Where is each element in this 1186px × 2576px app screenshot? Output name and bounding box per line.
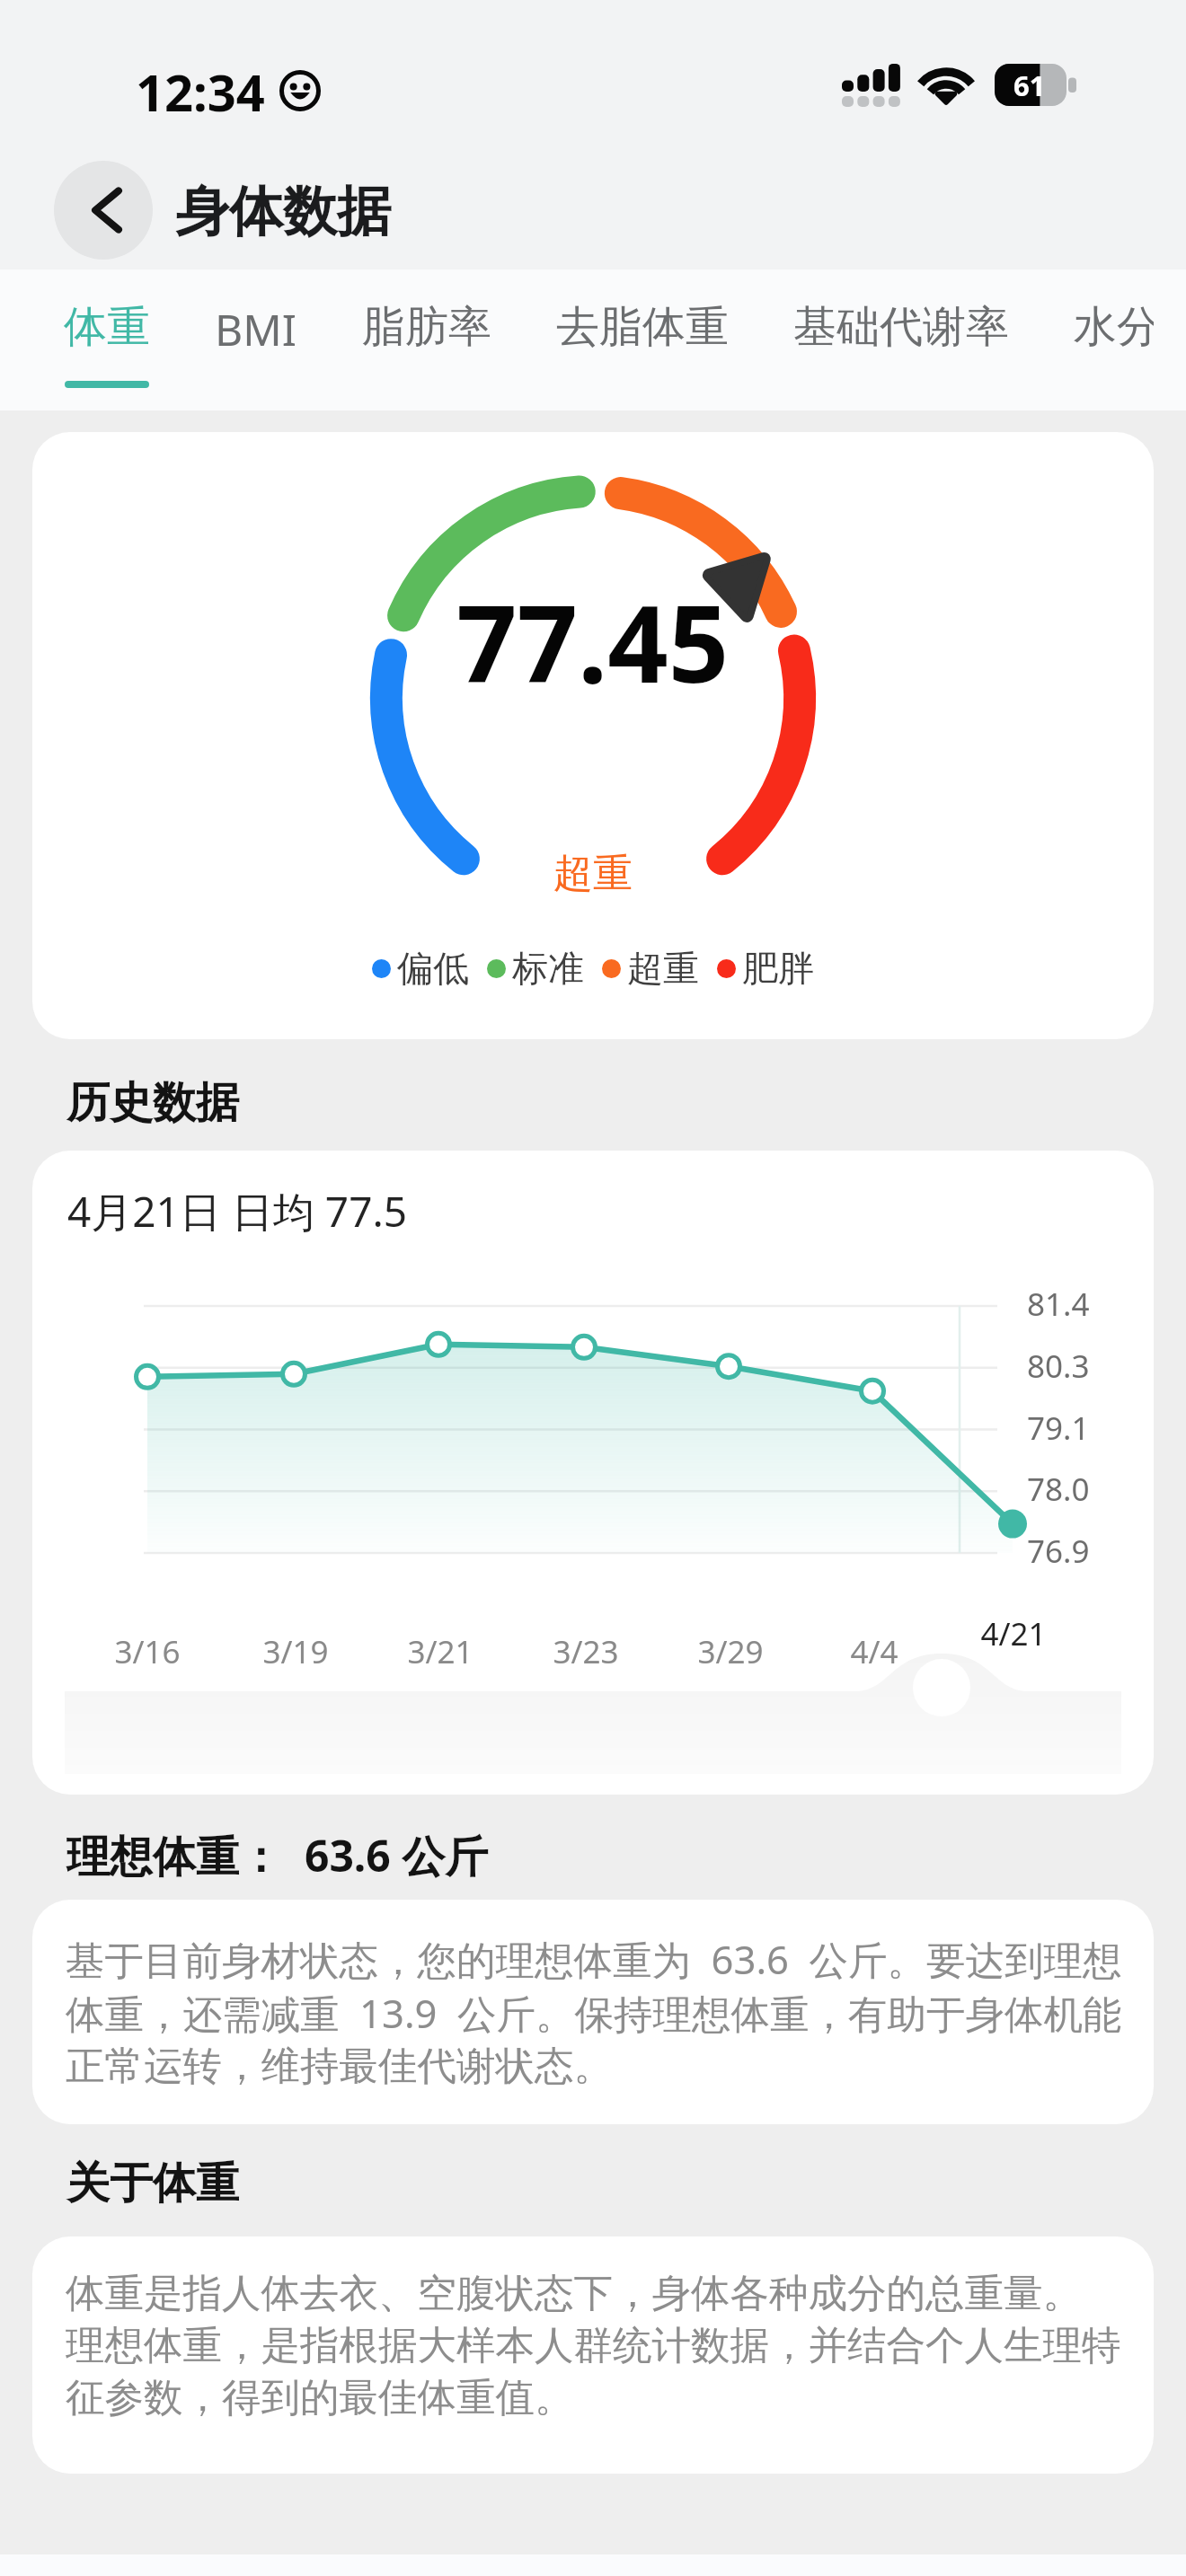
staticText: 80.3	[1027, 1345, 1090, 1388]
staticText: 3/21	[407, 1630, 474, 1673]
staticText: 77.45	[456, 569, 730, 714]
staticText: 去脂体重	[556, 300, 729, 354]
staticText: 水分率	[1074, 300, 1154, 354]
button[interactable]: Back	[54, 161, 153, 260]
staticText: 超重	[553, 849, 633, 898]
button[interactable]: BMI	[182, 269, 330, 385]
staticText: 79.1	[1027, 1407, 1090, 1450]
staticText: 3/19	[262, 1630, 329, 1673]
staticText: 标准	[512, 946, 584, 991]
staticText: 身体数据	[175, 178, 391, 246]
staticText: 76.9	[1027, 1530, 1090, 1573]
staticText: 偏低	[397, 946, 469, 991]
staticText: 3/23	[553, 1630, 619, 1673]
button[interactable]: 脂肪率	[330, 269, 524, 381]
staticText: 78.0	[1027, 1468, 1090, 1511]
staticText: 理想体重： 63.6 公斤	[66, 1826, 489, 1885]
staticText: 61	[1013, 66, 1046, 104]
button[interactable]: 水分率	[1041, 269, 1186, 381]
staticText: 基础代谢率	[793, 300, 1009, 354]
staticText: 肥胖	[742, 946, 814, 991]
staticText: 超重	[627, 946, 699, 991]
staticText: 基于目前身材状态，您的理想体重为 63.6 公斤。要达到理想体重，还需减重 13…	[66, 1932, 1154, 2091]
button[interactable]: 基础代谢率	[761, 269, 1041, 381]
staticText: 历史数据	[66, 1076, 239, 1130]
staticText: 81.4	[1027, 1283, 1090, 1326]
staticText: 4/21	[980, 1612, 1047, 1655]
staticText: 3/16	[114, 1630, 181, 1673]
staticText: 3/29	[697, 1630, 764, 1673]
staticText: 关于体重	[66, 2157, 239, 2210]
button[interactable]: 去脂体重	[524, 269, 761, 381]
staticText: BMI	[215, 300, 297, 358]
staticText: 4月21日 日均 77.5	[67, 1183, 408, 1239]
staticText: 12:34	[136, 57, 265, 126]
staticText: 4/4	[850, 1630, 898, 1673]
staticText: 体重	[64, 300, 150, 354]
button[interactable]: 体重	[31, 269, 182, 388]
staticText: 体重是指人体去衣、空腹状态下，身体各种成分的总重量。 理想体重，是指根据大样本人…	[66, 2269, 1154, 2422]
staticText: 脂肪率	[362, 300, 491, 354]
